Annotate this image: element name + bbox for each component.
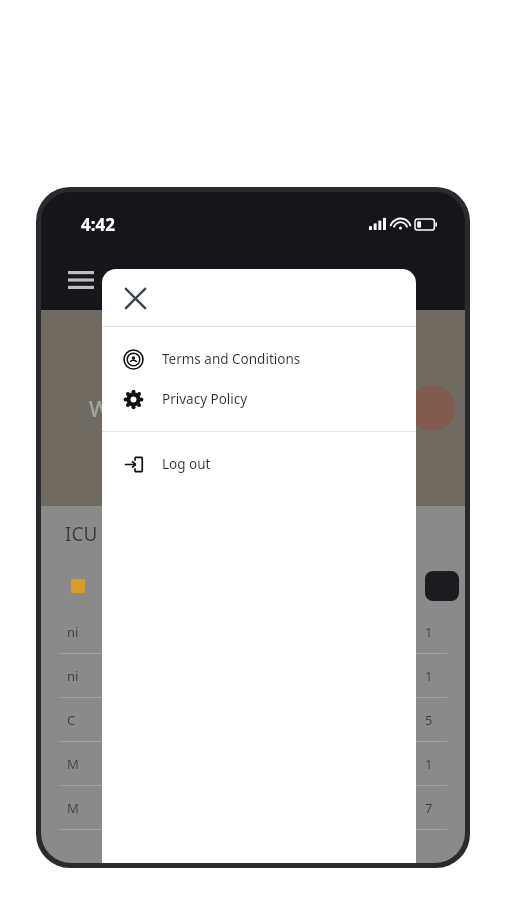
- staticText: Log out: [162, 455, 211, 473]
- staticText: ICU: [65, 521, 98, 547]
- staticText: M: [67, 799, 79, 817]
- staticText: C: [67, 711, 76, 729]
- button[interactable]: Privacy Policy: [102, 379, 416, 419]
- staticText: 7: [425, 799, 433, 817]
- staticText: 5: [425, 711, 433, 729]
- staticText: 1: [425, 667, 433, 685]
- button[interactable]: M: [41, 786, 465, 829]
- button[interactable]: M: [41, 742, 465, 785]
- staticText: ni: [67, 667, 79, 685]
- staticText: 4:42: [81, 213, 115, 236]
- staticText: ni: [67, 623, 79, 641]
- staticText: 1: [425, 623, 433, 641]
- staticText: W: [89, 393, 110, 423]
- button[interactable]: Close menu: [114, 277, 156, 319]
- staticText: 1: [425, 755, 433, 773]
- staticText: M: [67, 755, 79, 773]
- button[interactable]: Log out: [102, 444, 416, 484]
- button[interactable]: ni: [41, 654, 465, 697]
- button[interactable]: Terms and Conditions: [102, 339, 416, 379]
- button[interactable]: C: [41, 698, 465, 741]
- staticText: Terms and Conditions: [162, 350, 301, 368]
- staticText: Privacy Policy: [162, 390, 248, 408]
- button[interactable]: More: [425, 571, 459, 601]
- button[interactable]: Open navigation menu: [61, 260, 101, 300]
- button[interactable]: ni: [41, 610, 465, 653]
